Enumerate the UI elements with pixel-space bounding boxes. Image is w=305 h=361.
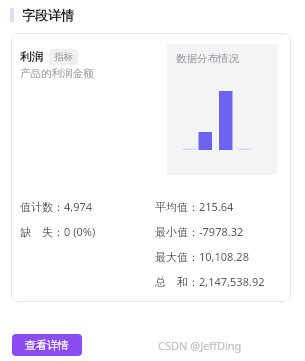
button[interactable]: 查看详情: [12, 334, 82, 356]
staticText: 平均值：: [155, 200, 199, 214]
staticText: 值计数：: [20, 200, 64, 214]
staticText: 最大值：: [155, 250, 199, 264]
staticText: 数据分布情况: [176, 52, 239, 65]
staticText: 4,974: [64, 199, 93, 214]
staticText: 指标: [54, 51, 73, 63]
staticText: 查看详情: [25, 338, 69, 352]
staticText: 字段详情: [22, 7, 74, 23]
staticText: 产品的利润金额: [20, 67, 94, 80]
staticText: 10,108.28: [199, 249, 249, 264]
staticText: 总 和：: [155, 274, 199, 289]
staticText: -7978.32: [199, 224, 244, 239]
staticText: 0 (0%): [64, 224, 96, 239]
staticText: 利润: [20, 50, 43, 64]
staticText: CSDN @JeffDing: [158, 338, 242, 353]
staticText: 最小值：: [155, 225, 199, 239]
staticText: 2,147,538.92: [199, 274, 265, 289]
staticText: 缺 失：: [20, 224, 64, 239]
staticText: 215.64: [199, 199, 234, 214]
button[interactable]: 利润: [11, 33, 291, 302]
